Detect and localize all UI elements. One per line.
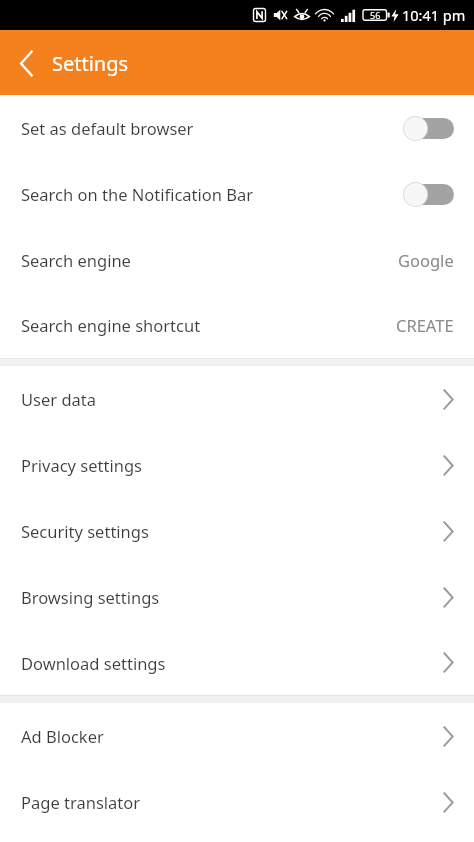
staticText: Download settings <box>21 652 443 674</box>
button[interactable]: Browsing settings <box>0 564 474 630</box>
button[interactable]: User data <box>0 366 474 432</box>
staticText: User data <box>21 388 443 410</box>
button[interactable]: Back <box>0 37 52 89</box>
button[interactable]: Search engine shortcut <box>0 292 474 358</box>
staticText: Settings <box>52 50 129 77</box>
button[interactable]: Ad Blocker <box>0 703 474 769</box>
staticText: CREATE <box>396 314 454 336</box>
staticText: Browsing settings <box>21 586 443 608</box>
staticText: Privacy settings <box>21 454 443 476</box>
staticText: 10:41 pm <box>402 5 466 25</box>
staticText: Page translator <box>21 791 443 813</box>
staticText: Search engine <box>21 249 398 271</box>
staticText: Google <box>398 249 454 271</box>
staticText: Search on the Notification Bar <box>21 183 403 205</box>
button[interactable]: Privacy settings <box>0 432 474 498</box>
staticText: Security settings <box>21 520 443 542</box>
staticText: Ad Blocker <box>21 725 443 747</box>
button[interactable]: Search on the Notification Bar <box>0 161 474 227</box>
button[interactable]: Download settings <box>0 630 474 695</box>
button[interactable]: Set as default browser <box>0 95 474 161</box>
button[interactable]: Security settings <box>0 498 474 564</box>
staticText: Search engine shortcut <box>21 314 396 336</box>
button[interactable]: Search engine <box>0 227 474 292</box>
staticText: 56 <box>370 9 381 21</box>
button[interactable]: Page translator <box>0 769 474 835</box>
staticText: Set as default browser <box>21 117 403 139</box>
